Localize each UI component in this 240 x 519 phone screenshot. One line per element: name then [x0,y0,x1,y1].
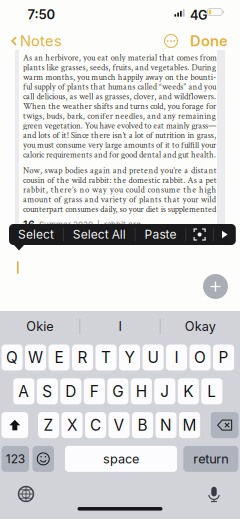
staticText: cousin of the wild rabbit: the domestic … [23,174,217,186]
button[interactable]: space [65,446,177,472]
button[interactable]: W [25,344,46,370]
staticText: X [67,416,77,434]
staticText: B [138,416,148,434]
button[interactable]: B [132,412,153,438]
staticText: Summer 2020 | rabbit.org [35,220,141,229]
staticText: Y [124,348,134,367]
button[interactable]: M [179,412,200,438]
staticText: you must consume very large amounts of i… [23,139,216,151]
button[interactable]: N [155,412,177,438]
staticText: counterpart consumes daily, so your diet… [23,204,216,215]
staticText: Done [190,32,228,50]
staticText: Q [6,348,18,367]
staticText: O [194,348,206,367]
button[interactable]: Add attachment [203,274,228,299]
staticText: warm months, you munch happily away on t… [23,71,216,83]
staticText: A [18,382,29,401]
button[interactable]: return [183,446,238,472]
button[interactable]: G [107,378,128,404]
button[interactable]: Okay [160,311,240,342]
staticText: W [28,348,43,367]
button[interactable]: Emoji [32,446,54,472]
button[interactable]: 123 [1,446,29,472]
staticText: Notes [20,32,62,50]
button[interactable]: Shift [1,412,28,438]
staticText: H [136,382,147,401]
button[interactable]: A [13,378,34,404]
button[interactable]: K [178,378,199,404]
button[interactable]: S [37,378,58,404]
staticText: Okay [185,319,216,334]
button[interactable]: T [95,344,117,370]
staticText: I [175,348,179,367]
staticText: Z [43,416,53,434]
staticText: R [77,348,87,367]
staticText: L [207,382,216,401]
button[interactable]: I [80,311,160,342]
staticText: As an herbivore, you eat only material t… [23,52,217,63]
staticText: 4G [190,8,207,23]
staticText: K [183,382,193,401]
button[interactable]: R [72,344,93,370]
button[interactable]: O [189,344,211,370]
button[interactable]: Okie [0,311,79,342]
button[interactable]: Scan Text [186,224,213,245]
button[interactable]: C [85,412,106,438]
staticText: green vegetation. You have evolved to ea… [23,120,216,131]
button[interactable]: P [213,344,234,370]
button[interactable]: L [201,378,222,404]
staticText: T [101,348,111,367]
staticText: Select [18,227,54,242]
staticText: rabbit, there’s no way you could consume… [23,184,216,196]
button[interactable]: Z [38,412,59,438]
staticText: I [118,319,121,334]
staticText: N [160,416,172,434]
button[interactable]: Paste [135,224,185,245]
button[interactable]: More options [214,224,236,245]
staticText: V [113,416,124,434]
staticText: and lots of it! Since there isn’t a lot … [23,130,216,141]
staticText: Select All [73,227,126,242]
button[interactable]: Switch keyboard [12,480,40,508]
button[interactable]: Done [183,29,236,53]
staticText: Paste [144,227,176,242]
staticText: G [112,382,123,401]
button[interactable]: D [60,378,81,404]
button[interactable]: Delete [211,412,238,438]
staticText: plants like grasses, seeds, fruits, and … [23,62,216,73]
staticText: Okie [26,319,53,334]
button[interactable]: More [159,29,183,53]
staticText: amount of grass and variety of plants th… [23,194,216,205]
staticText: S [42,382,52,401]
button[interactable]: J [154,378,175,404]
staticText: E [54,348,63,367]
button[interactable]: F [84,378,105,404]
button[interactable]: U [142,344,164,370]
staticText: Now, swap bodies again and pretend you’r… [23,165,217,176]
staticText: ful supply of plants that humans called … [23,81,216,93]
button[interactable]: Select All [64,224,135,245]
button[interactable]: Select [9,224,63,245]
staticText: 7:50 [27,6,55,22]
staticText: space [103,451,139,466]
button[interactable]: H [131,378,152,404]
button[interactable]: Notes [4,29,68,53]
button[interactable]: X [61,412,83,438]
button[interactable]: Y [119,344,140,370]
button[interactable]: V [108,412,130,438]
staticText: M [183,416,197,434]
staticText: D [65,382,76,401]
staticText: U [148,348,159,367]
staticText: twigs, buds, bark, conifer needles, and … [23,110,216,122]
button[interactable]: Q [1,344,23,370]
staticText: return [193,451,228,466]
button[interactable]: Dictate [200,480,228,508]
staticText: caloric requirements and for good dental… [23,149,216,160]
button[interactable]: E [48,344,70,370]
staticText: C [90,416,101,434]
button[interactable]: I [166,344,187,370]
staticText: P [219,348,229,367]
staticText: call delicious, as well as grasses, clov… [23,91,216,102]
staticText: J [160,382,169,401]
staticText: 16 [23,218,35,231]
